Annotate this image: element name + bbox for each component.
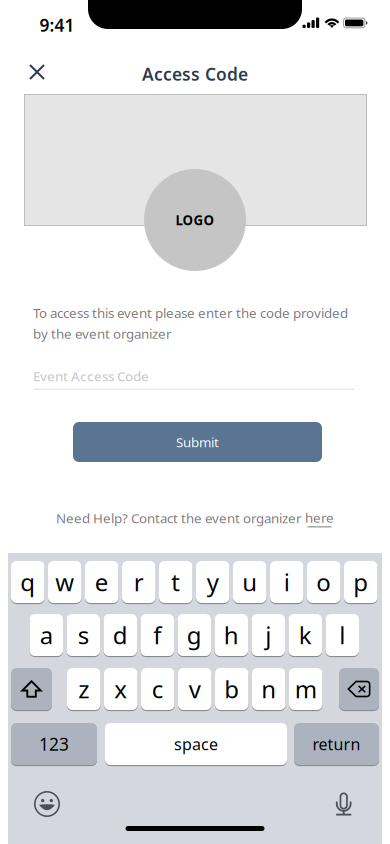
staticText: g bbox=[187, 619, 202, 651]
button[interactable]: Shift bbox=[11, 668, 52, 711]
staticText: j bbox=[265, 619, 271, 651]
staticText: To access this event please enter the co… bbox=[33, 304, 348, 322]
button[interactable]: b bbox=[215, 668, 248, 711]
button[interactable]: a bbox=[29, 614, 63, 657]
button[interactable]: g bbox=[177, 614, 211, 657]
button[interactable]: Delete bbox=[339, 668, 379, 711]
staticText: return bbox=[312, 733, 360, 755]
button[interactable]: Close bbox=[15, 50, 59, 94]
button[interactable]: h bbox=[214, 614, 248, 657]
button[interactable]: o bbox=[307, 561, 340, 604]
staticText: n bbox=[261, 673, 276, 705]
button[interactable]: p bbox=[344, 561, 377, 604]
staticText: q bbox=[20, 566, 35, 598]
button[interactable]: Dictation bbox=[327, 789, 361, 819]
button[interactable]: t bbox=[159, 561, 192, 604]
staticText: p bbox=[353, 566, 368, 598]
button[interactable]: f bbox=[140, 614, 174, 657]
staticText: space bbox=[174, 733, 218, 755]
button[interactable]: r bbox=[122, 561, 155, 604]
staticText: w bbox=[55, 566, 74, 598]
staticText: Submit bbox=[176, 433, 219, 451]
staticText: r bbox=[134, 566, 144, 598]
staticText: i bbox=[284, 566, 290, 598]
button[interactable]: i bbox=[270, 561, 303, 604]
button[interactable]: d bbox=[103, 614, 137, 657]
staticText: l bbox=[339, 619, 345, 651]
staticText: Need Help? Contact the event organizer bbox=[56, 509, 305, 527]
button[interactable]: 123 bbox=[11, 723, 97, 766]
staticText: u bbox=[242, 566, 257, 598]
staticText: by the event organizer bbox=[33, 325, 172, 342]
button[interactable]: space bbox=[105, 723, 287, 766]
staticText: b bbox=[224, 673, 239, 705]
staticText: 123 bbox=[39, 732, 69, 755]
staticText: c bbox=[152, 673, 164, 705]
staticText: d bbox=[113, 619, 128, 651]
staticText: s bbox=[78, 619, 89, 651]
staticText: a bbox=[40, 619, 53, 651]
staticText: t bbox=[171, 566, 180, 598]
staticText: e bbox=[95, 566, 109, 598]
staticText: v bbox=[189, 673, 201, 705]
button[interactable]: here bbox=[305, 509, 334, 527]
staticText: LOGO bbox=[175, 211, 214, 229]
staticText: k bbox=[299, 619, 312, 651]
button[interactable]: return bbox=[294, 723, 379, 766]
staticText: z bbox=[78, 673, 89, 705]
staticText: f bbox=[153, 619, 161, 651]
button[interactable]: x bbox=[104, 668, 137, 711]
button[interactable]: j bbox=[251, 614, 285, 657]
button[interactable]: l bbox=[325, 614, 359, 657]
staticText: x bbox=[114, 673, 127, 705]
staticText: 9:41 bbox=[39, 13, 74, 36]
staticText: o bbox=[316, 566, 331, 598]
button[interactable]: n bbox=[252, 668, 285, 711]
staticText: Access Code bbox=[142, 62, 248, 85]
button[interactable]: y bbox=[196, 561, 229, 604]
staticText: here bbox=[305, 509, 334, 526]
staticText: Event Access Code bbox=[33, 367, 149, 385]
button[interactable]: w bbox=[48, 561, 81, 604]
button[interactable]: Emoji keyboard bbox=[30, 789, 64, 819]
staticText: m bbox=[295, 673, 317, 705]
button[interactable]: q bbox=[11, 561, 44, 604]
button[interactable]: u bbox=[233, 561, 266, 604]
button[interactable]: e bbox=[85, 561, 118, 604]
button[interactable]: c bbox=[141, 668, 174, 711]
button[interactable]: z bbox=[67, 668, 100, 711]
staticText: h bbox=[224, 619, 239, 651]
button[interactable]: v bbox=[178, 668, 211, 711]
button[interactable]: s bbox=[66, 614, 100, 657]
button[interactable]: m bbox=[289, 668, 322, 711]
staticText: y bbox=[207, 566, 219, 598]
button[interactable]: k bbox=[288, 614, 322, 657]
button[interactable]: Submit bbox=[73, 422, 322, 462]
